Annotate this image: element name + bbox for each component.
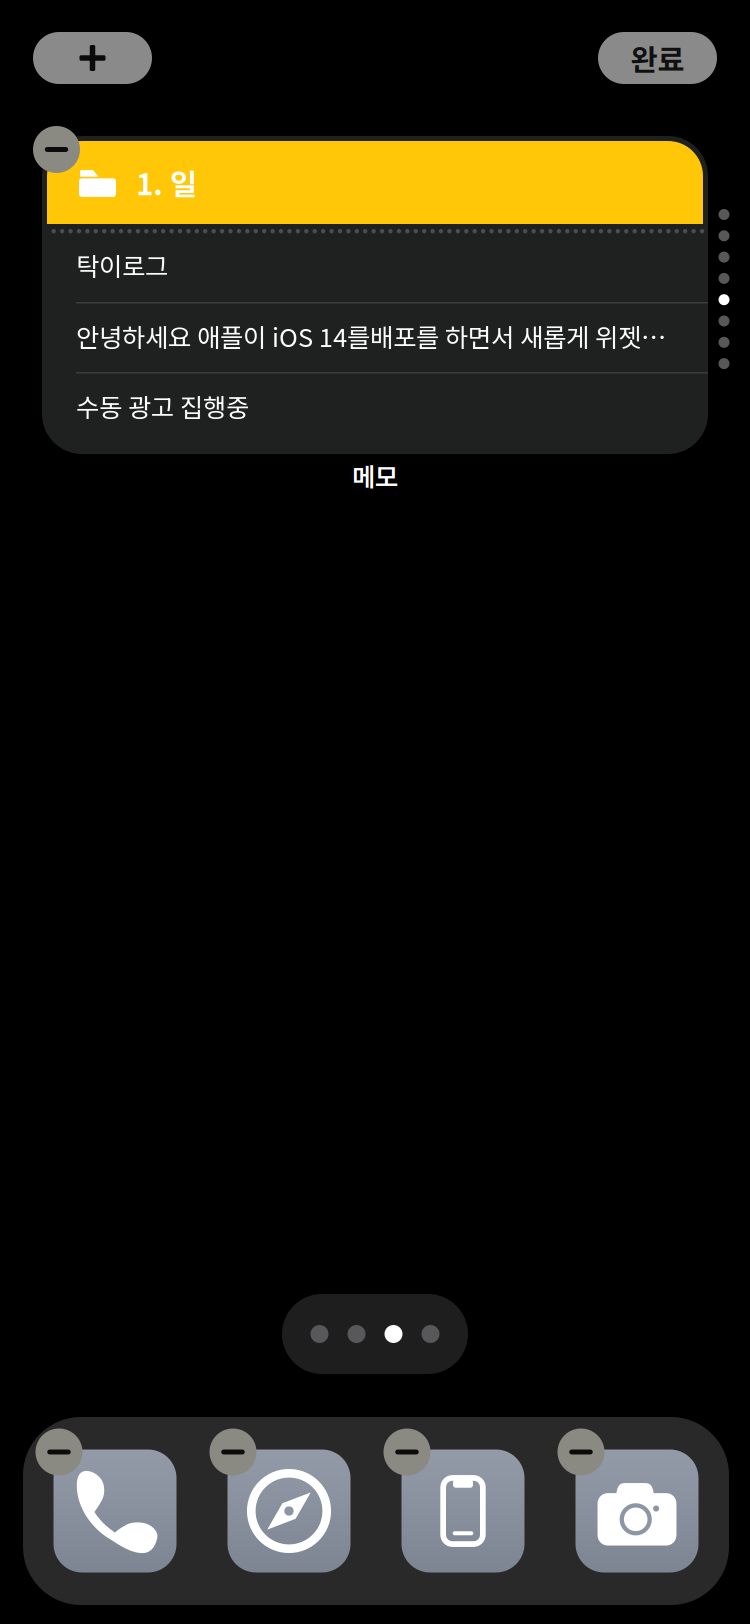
staticText: 1. 일 [136, 161, 197, 204]
staticText: 안녕하세요 애플이 iOS 14를배포를 하면서 새롭게 위젯… [76, 318, 666, 354]
staticText: 메모 [352, 457, 398, 494]
staticText: 완료 [630, 37, 684, 79]
button[interactable]: Camera [575, 1449, 698, 1572]
button[interactable]: Phone [53, 1449, 176, 1572]
button[interactable]: 1. 일 [42, 136, 708, 494]
button[interactable]: 완료 [598, 32, 717, 84]
button[interactable]: Safari [227, 1449, 350, 1572]
button[interactable]: Add Widget [33, 32, 152, 84]
staticText: 탁이로그 [76, 247, 168, 283]
button[interactable]: Messages [401, 1449, 524, 1572]
staticText: 수동 광고 집행중 [76, 388, 249, 424]
